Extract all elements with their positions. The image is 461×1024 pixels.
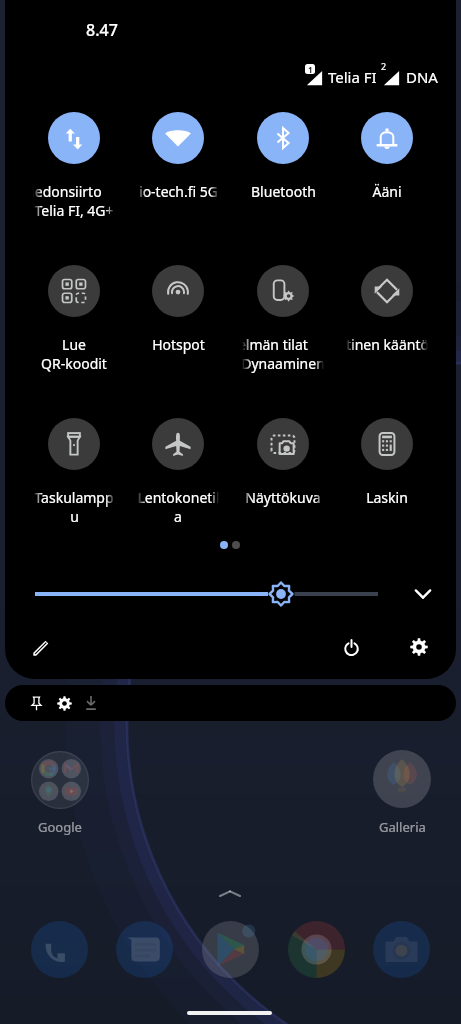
button[interactable]: Play Store	[202, 921, 259, 978]
button[interactable]: Notification settings	[50, 689, 78, 717]
button[interactable]: Laskin	[335, 418, 439, 548]
staticText: Lentokonetil	[137, 488, 219, 507]
button[interactable]: Hotspot	[126, 265, 230, 395]
button[interactable]: Pin	[22, 689, 50, 717]
staticText: Galleria	[379, 818, 426, 836]
button[interactable]: Chrome	[288, 921, 345, 978]
button[interactable]: Ääni	[335, 112, 439, 242]
button[interactable]: Google folder	[31, 751, 89, 809]
button[interactable]: Messages	[116, 921, 173, 978]
button[interactable]: Edit tiles	[24, 630, 58, 664]
button[interactable]: Phone	[31, 921, 88, 978]
staticText: 8.47	[86, 19, 118, 41]
staticText: Google	[38, 818, 82, 836]
staticText: Automaattinen kääntö	[346, 335, 428, 354]
staticText: 2	[381, 60, 387, 72]
staticText: QR-koodit	[41, 354, 107, 373]
staticText: io-tech.fi 5G	[139, 182, 218, 201]
staticText: DNA	[406, 67, 438, 87]
staticText: Järjestelmän tilat	[242, 335, 308, 354]
button[interactable]: Galleria	[373, 750, 431, 808]
button[interactable]: Settings	[402, 630, 436, 664]
button[interactable]: Notification history	[77, 689, 105, 717]
button[interactable]: Camera	[373, 921, 430, 978]
button[interactable]: Taskulampp	[22, 418, 126, 548]
staticText: Lue	[62, 335, 86, 354]
button[interactable]: Brightness	[30, 574, 390, 614]
button[interactable]: Power	[334, 630, 368, 664]
button[interactable]: io-tech.fi 5G	[126, 112, 230, 242]
staticText: Näyttökuva	[245, 488, 321, 507]
staticText: Telia FI	[328, 67, 377, 87]
button[interactable]: Lentokonetil	[126, 418, 230, 548]
staticText: a	[174, 507, 182, 526]
staticText: u	[70, 507, 79, 526]
staticText: Dynaaminen	[242, 354, 324, 373]
staticText: Hotspot	[152, 335, 205, 354]
staticText: Ääni	[372, 182, 402, 201]
staticText: Telia FI, 4G+	[34, 201, 114, 220]
button[interactable]: Bluetooth	[231, 112, 335, 242]
button[interactable]: Lue	[22, 265, 126, 395]
staticText: 1	[308, 64, 313, 74]
staticText: Laskin	[366, 488, 408, 507]
staticText: Taskulampp	[34, 488, 114, 507]
button[interactable]: Näyttökuva	[231, 418, 335, 548]
button[interactable]: Automaattinen kääntö	[335, 265, 439, 395]
button[interactable]: Järjestelmän tilat	[231, 265, 335, 395]
button[interactable]: Expand brightness	[405, 576, 441, 612]
button[interactable]: Tiedonsiirto	[22, 112, 126, 242]
staticText: Bluetooth	[251, 182, 316, 201]
staticText: Tiedonsiirto	[33, 182, 102, 201]
